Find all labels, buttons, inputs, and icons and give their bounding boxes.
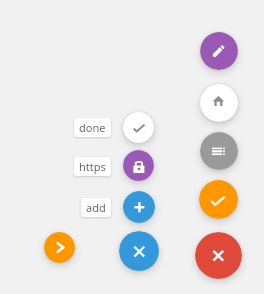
button[interactable]: Add xyxy=(123,191,155,223)
button[interactable]: Close xyxy=(195,232,242,279)
staticText: add xyxy=(86,200,106,215)
button[interactable]: add xyxy=(81,198,111,217)
button[interactable]: Home xyxy=(200,84,238,122)
button[interactable]: Edit xyxy=(200,32,238,70)
button[interactable]: https xyxy=(74,157,111,176)
button[interactable]: Done xyxy=(123,112,154,143)
staticText: done xyxy=(79,120,106,135)
button[interactable]: Secure xyxy=(123,150,154,181)
staticText: https xyxy=(79,159,106,174)
button[interactable]: Done xyxy=(199,180,238,219)
button[interactable]: Next xyxy=(44,232,75,263)
button[interactable]: Close menu xyxy=(119,231,159,271)
button[interactable]: View list xyxy=(200,132,238,170)
button[interactable]: done xyxy=(74,118,111,137)
